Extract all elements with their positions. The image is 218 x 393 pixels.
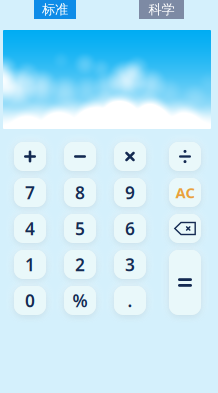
button[interactable]: Minus: [59, 137, 101, 176]
staticText: 4: [25, 217, 35, 240]
staticText: 3: [125, 253, 135, 276]
button[interactable]: Plus: [9, 137, 51, 176]
button[interactable]: %: [59, 281, 101, 320]
staticText: AC: [175, 183, 194, 202]
button[interactable]: Multiply: [109, 137, 151, 176]
staticText: .: [127, 289, 132, 312]
button[interactable]: 4: [9, 209, 51, 248]
button[interactable]: Divide: [164, 137, 206, 176]
button[interactable]: 6: [109, 209, 151, 248]
staticText: 8: [75, 181, 85, 204]
staticText: 标准: [42, 1, 68, 18]
staticText: %: [72, 289, 87, 312]
button[interactable]: 7: [9, 173, 51, 212]
button[interactable]: 2: [59, 245, 101, 284]
staticText: 9: [125, 181, 135, 204]
button[interactable]: Equals: [164, 245, 206, 320]
staticText: 7: [25, 181, 35, 204]
button[interactable]: 标准: [34, 0, 76, 19]
button[interactable]: 0: [9, 281, 51, 320]
button[interactable]: Backspace: [164, 209, 206, 248]
button[interactable]: .: [109, 281, 151, 320]
button[interactable]: 5: [59, 209, 101, 248]
staticText: 科学: [148, 1, 174, 18]
staticText: 6: [125, 217, 135, 240]
button[interactable]: Clear: [164, 173, 206, 212]
staticText: 5: [75, 217, 85, 240]
button[interactable]: 8: [59, 173, 101, 212]
button[interactable]: 1: [9, 245, 51, 284]
staticText: 2: [75, 253, 85, 276]
staticText: 1: [25, 253, 35, 276]
button[interactable]: 科学: [139, 0, 184, 19]
button[interactable]: 9: [109, 173, 151, 212]
button[interactable]: 3: [109, 245, 151, 284]
staticText: 0: [25, 289, 35, 312]
